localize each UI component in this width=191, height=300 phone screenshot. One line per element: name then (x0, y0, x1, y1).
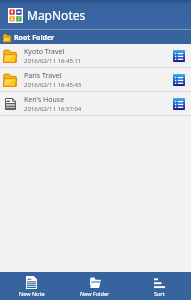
button[interactable]: Root Folder (0, 30, 191, 44)
staticText: New Folder (80, 290, 110, 297)
staticText: 2016/02/11 16:45:43 (24, 81, 82, 89)
staticText: MapNotes (27, 7, 86, 23)
button[interactable]: Options (173, 98, 185, 110)
staticText: Paris Travel (24, 71, 62, 81)
button[interactable]: Options (173, 50, 185, 62)
other: New Note (26, 276, 37, 289)
staticText: Root Folder (14, 33, 55, 43)
other: MapNotes (8, 8, 23, 23)
staticText: Ken's House (24, 95, 65, 105)
staticText: New Note (19, 290, 45, 297)
button[interactable]: Options (173, 74, 185, 86)
staticText: Sort (154, 290, 165, 297)
staticText: Kyoto Travel (24, 47, 65, 57)
button[interactable]: New Folder (63, 272, 127, 300)
button[interactable]: Ken's House (0, 92, 191, 116)
other: New Folder (90, 276, 101, 289)
button[interactable]: New Note (0, 272, 63, 300)
staticText: 2016/02/11 16:45:11 (24, 57, 82, 65)
button[interactable]: Sort (127, 272, 191, 300)
button[interactable]: Kyoto Travel (0, 44, 191, 68)
other: Sort (154, 276, 165, 289)
button[interactable]: Paris Travel (0, 68, 191, 92)
staticText: 2016/02/11 16:57:04 (24, 105, 82, 113)
